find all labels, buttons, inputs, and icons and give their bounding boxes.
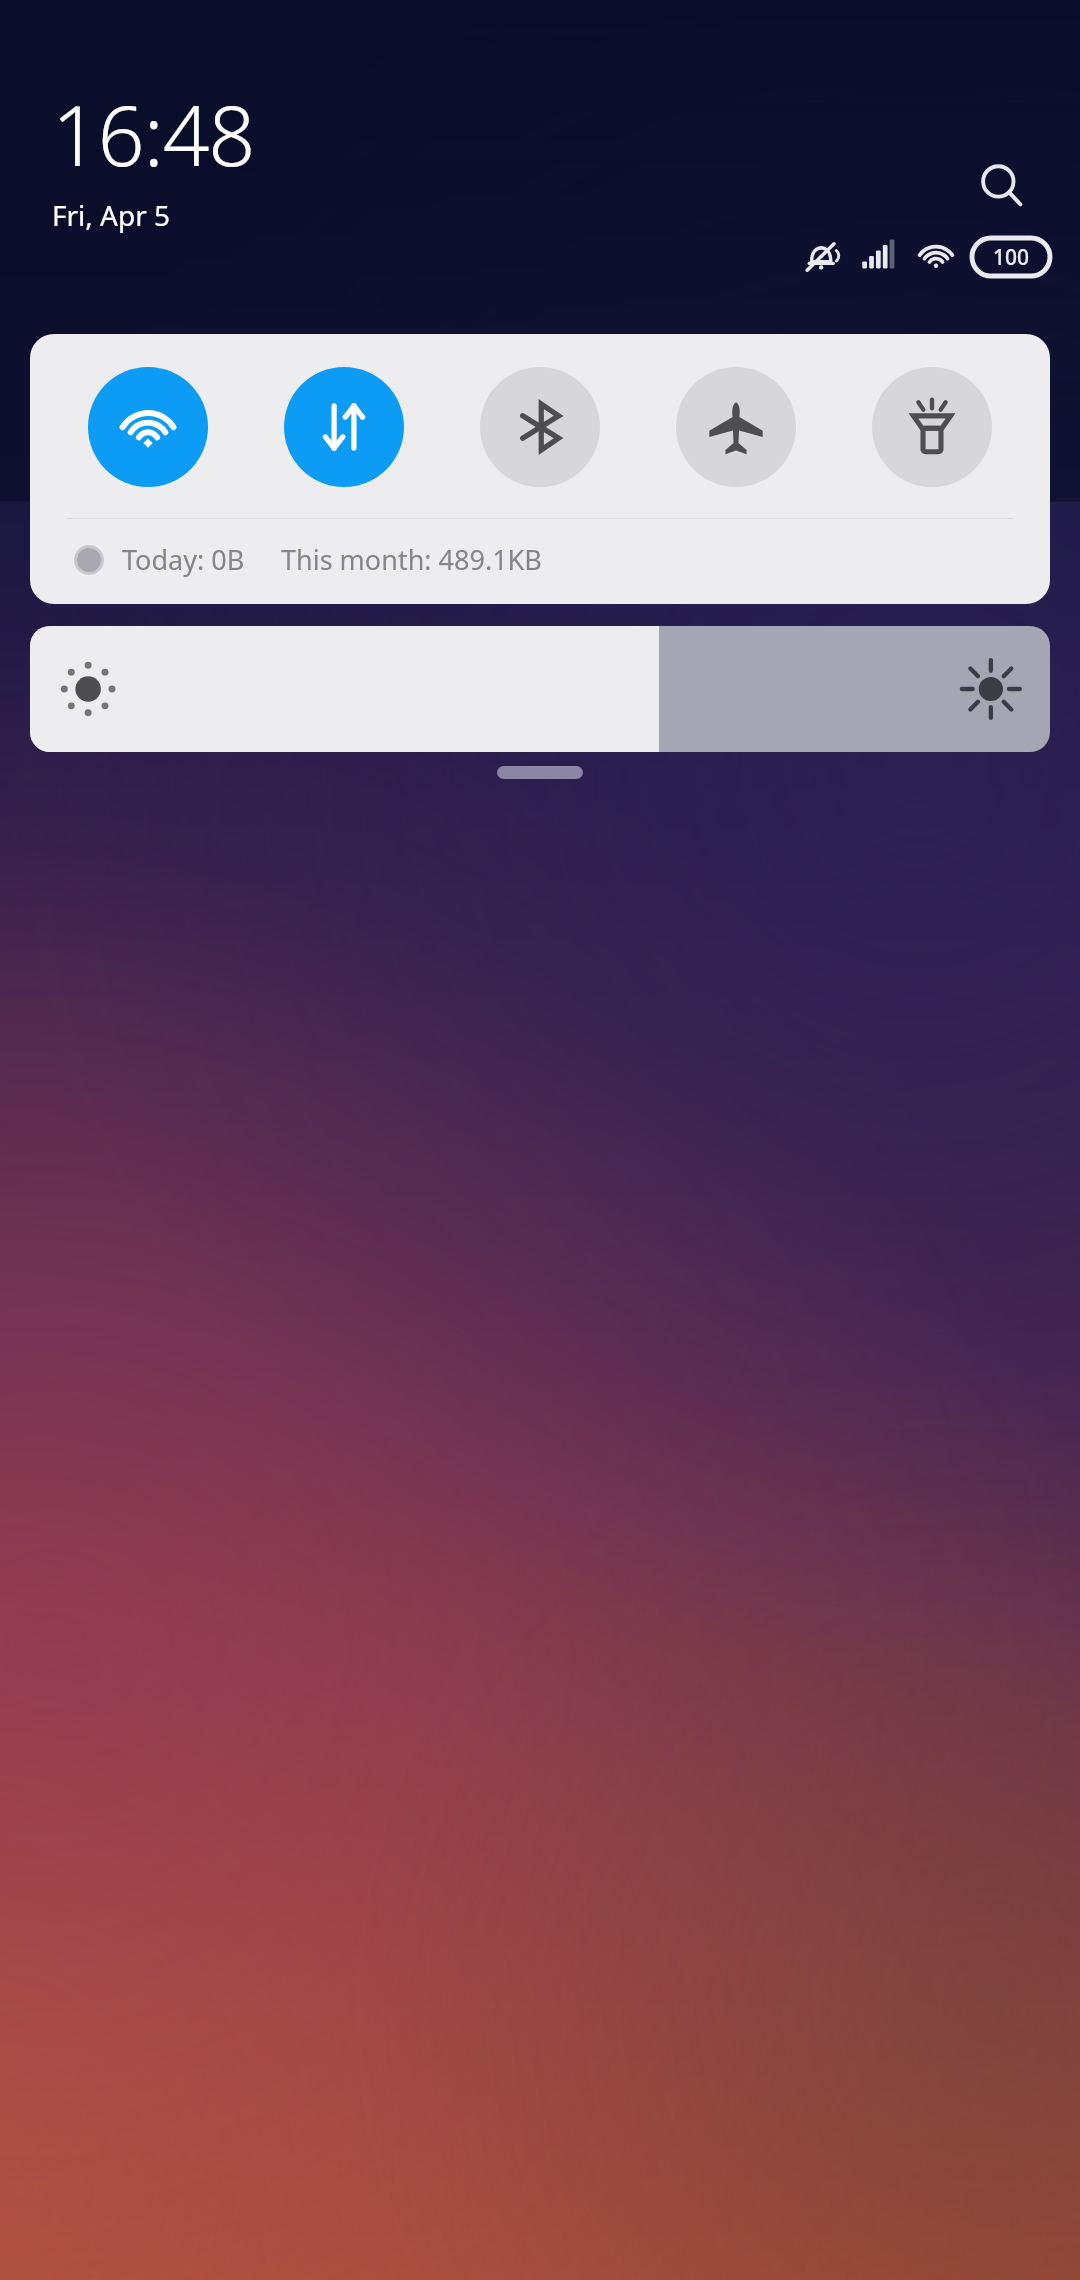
- button[interactable]: Bluetooth: [442, 362, 638, 492]
- button[interactable]: Brightness: [30, 626, 1050, 752]
- button[interactable]: Expand quick settings: [497, 766, 583, 779]
- button[interactable]: Airplane mode: [638, 362, 834, 492]
- button[interactable]: Today: 0B: [74, 541, 1020, 578]
- staticText: Today: 0B: [122, 541, 245, 578]
- staticText: Fri, Apr 5: [52, 196, 171, 234]
- staticText: 16:48: [52, 78, 255, 190]
- button[interactable]: Search: [966, 150, 1038, 222]
- staticText: This month: 489.1KB: [281, 541, 542, 578]
- button[interactable]: Wi-Fi: [50, 362, 246, 492]
- button[interactable]: Mobile data: [246, 362, 442, 492]
- button[interactable]: Flashlight: [834, 362, 1030, 492]
- staticText: 100: [993, 243, 1030, 272]
